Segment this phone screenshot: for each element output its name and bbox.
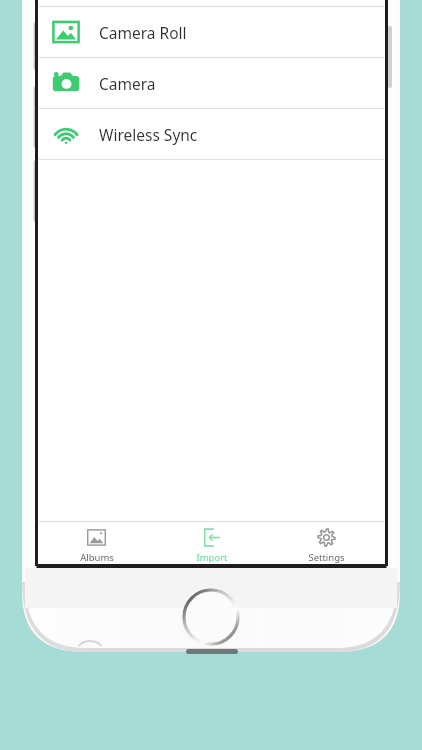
staticText: Camera xyxy=(99,73,156,94)
staticText: Camera Roll xyxy=(99,22,187,43)
button[interactable]: Camera xyxy=(39,58,384,108)
other: Settings xyxy=(317,528,336,547)
staticText: Settings xyxy=(308,551,345,564)
staticText: Wireless Sync xyxy=(99,124,198,145)
button[interactable]: Camera Roll xyxy=(39,7,384,57)
button[interactable]: Albums xyxy=(39,524,154,564)
button[interactable]: Wireless Sync xyxy=(39,109,384,159)
staticText: Import xyxy=(196,551,228,564)
button[interactable]: Import xyxy=(154,524,269,564)
other: Import xyxy=(202,528,221,547)
staticText: Albums xyxy=(80,551,114,564)
button[interactable]: Settings xyxy=(269,524,384,564)
other: Albums xyxy=(87,528,106,547)
